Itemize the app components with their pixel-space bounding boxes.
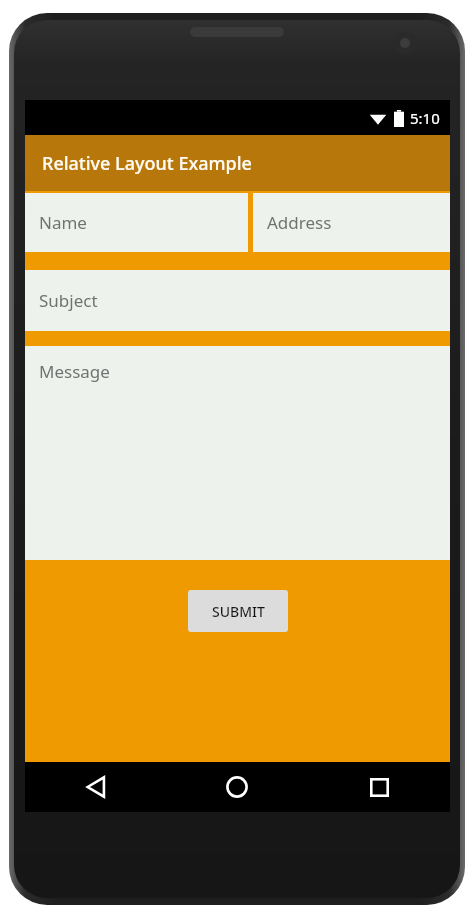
- staticText: Name: [39, 211, 87, 234]
- staticText: Message: [39, 360, 110, 383]
- staticText: Subject: [39, 289, 98, 312]
- button[interactable]: Home: [166, 762, 308, 812]
- staticText: 5:10: [410, 108, 440, 128]
- button[interactable]: Back: [25, 762, 166, 812]
- button[interactable]: Subject: [25, 270, 450, 331]
- button[interactable]: SUBMIT: [188, 590, 288, 632]
- button[interactable]: Address: [253, 193, 450, 252]
- staticText: Address: [267, 211, 332, 234]
- staticText: Relative Layout Example: [42, 151, 252, 176]
- button[interactable]: Recent apps: [308, 762, 450, 812]
- button[interactable]: Message: [25, 346, 450, 560]
- staticText: SUBMIT: [212, 602, 265, 621]
- button[interactable]: Name: [25, 193, 248, 252]
